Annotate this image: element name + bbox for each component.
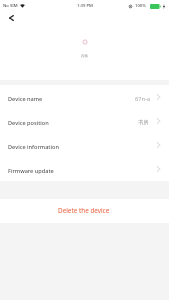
staticText: Device information xyxy=(8,143,59,151)
staticText: 在线 xyxy=(81,54,88,58)
staticText: Device position xyxy=(8,119,49,127)
staticText: 100% xyxy=(135,3,146,9)
staticText: Firmware update xyxy=(8,167,54,175)
staticText: 书房 xyxy=(138,119,149,126)
button[interactable]: Device information xyxy=(0,133,169,157)
button[interactable]: Device name xyxy=(0,85,169,109)
button[interactable]: Back xyxy=(0,11,23,27)
button[interactable]: Firmware update xyxy=(0,157,169,181)
staticText: Delete the device xyxy=(58,206,110,215)
button[interactable]: Device position xyxy=(0,109,169,133)
staticText: No SIM xyxy=(3,3,18,9)
staticText: 1:39 PM xyxy=(77,3,93,9)
staticText: Device name xyxy=(8,95,43,103)
button[interactable]: Delete the device xyxy=(0,199,169,223)
staticText: 67n-a xyxy=(135,95,151,103)
